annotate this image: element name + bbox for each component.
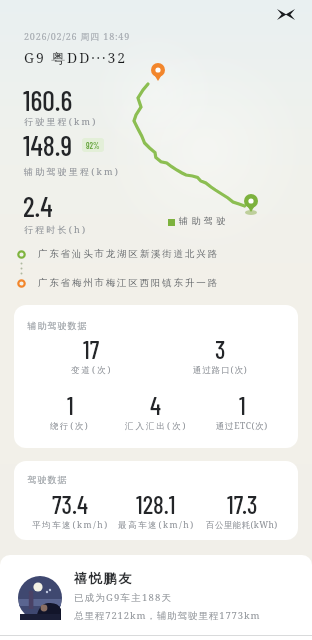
staticText: 128.1: [136, 489, 176, 519]
staticText: 160.6: [23, 83, 73, 117]
staticText: 1: [67, 390, 74, 420]
staticText: 辅助驾驶数据: [27, 320, 87, 331]
staticText: 2.4: [23, 189, 53, 223]
staticText: 禧悦鹏友: [74, 570, 134, 586]
staticText: 73.4: [52, 489, 89, 519]
staticText: 百公里能耗(kWh): [206, 519, 278, 531]
staticText: 总里程7212km，辅助驾驶里程1773km: [74, 609, 261, 622]
staticText: 4: [150, 390, 162, 420]
button[interactable]: 禧悦鹏友: [0, 555, 312, 640]
staticText: 广东省汕头市龙湖区新溪街道北兴路: [38, 248, 219, 260]
staticText: 17: [83, 334, 100, 364]
staticText: 已成为G9车主188天: [74, 591, 173, 604]
staticText: 广东省梅州市梅江区西阳镇东升一路: [38, 277, 219, 289]
staticText: 92%: [86, 140, 100, 150]
staticText: 辅助驾驶里程(km): [24, 165, 120, 177]
staticText: 17.3: [227, 489, 258, 519]
staticText: 148.9: [23, 128, 73, 162]
staticText: 辅助驾驶: [179, 215, 229, 226]
staticText: 绕行(次): [50, 420, 90, 432]
staticText: 平均车速(km/h): [32, 519, 109, 531]
staticText: 通过路口(次): [193, 364, 248, 376]
staticText: 汇入汇出(次): [125, 420, 188, 432]
staticText: 3: [215, 334, 226, 364]
staticText: G9 粤DD···32: [24, 48, 127, 67]
staticText: 1: [239, 390, 246, 420]
staticText: 行驶里程(km): [24, 115, 98, 127]
staticText: 通过ETC(次): [216, 420, 268, 432]
staticText: 驾驶数据: [27, 474, 67, 485]
button[interactable]: [270, 2, 302, 26]
staticText: 行程时长(h): [24, 223, 88, 235]
staticText: 2026/02/26 周四 18:49: [24, 30, 131, 42]
staticText: 变道(次): [71, 364, 113, 376]
staticText: 最高车速(km/h): [118, 519, 195, 531]
